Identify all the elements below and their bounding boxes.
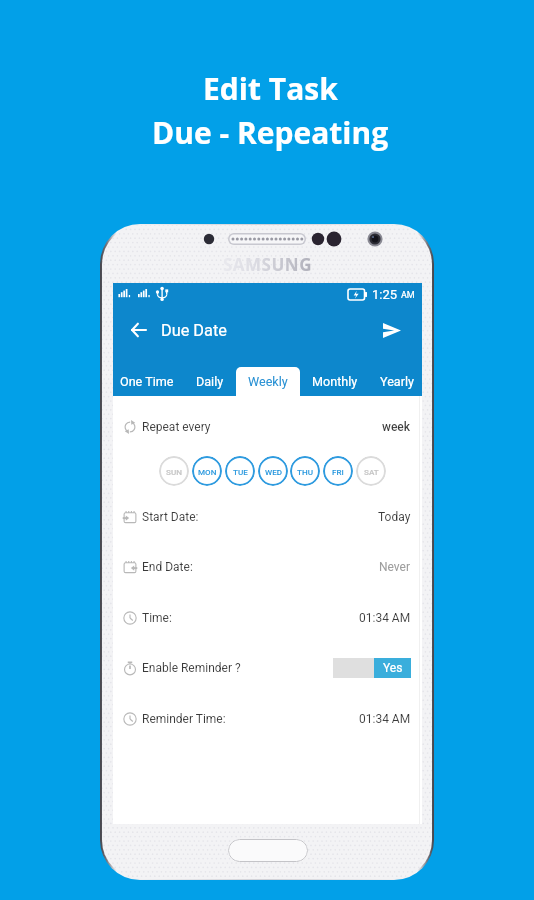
staticText: SUN: [166, 467, 182, 476]
button[interactable]: Repeat every: [123, 412, 411, 442]
button[interactable]: Yearly: [369, 367, 425, 396]
staticText: End Date:: [142, 560, 193, 574]
staticText: Time:: [142, 611, 172, 625]
button[interactable]: Start Date:: [123, 500, 411, 534]
staticText: FRI: [332, 467, 344, 476]
button[interactable]: Weekly: [236, 367, 300, 396]
staticText: WED: [265, 467, 282, 476]
staticText: Weekly: [248, 374, 288, 389]
staticText: Daily: [196, 374, 224, 389]
button[interactable]: MON: [192, 456, 222, 486]
staticText: Enable Reminder ?: [142, 661, 241, 675]
staticText: 01:34 AM: [359, 611, 411, 625]
button[interactable]: Reminder Time:: [123, 702, 411, 736]
staticText: Never: [379, 560, 411, 574]
staticText: Due - Repeating: [152, 112, 389, 153]
button[interactable]: Monthly: [300, 367, 369, 396]
staticText: AM: [401, 290, 415, 301]
staticText: Edit Task: [203, 68, 338, 109]
button[interactable]: SAT: [356, 456, 386, 486]
staticText: Yearly: [380, 374, 414, 389]
staticText: Repeat every: [142, 420, 211, 434]
button[interactable]: End Date:: [123, 550, 411, 584]
staticText: MON: [198, 467, 217, 476]
staticText: One Time: [120, 374, 174, 389]
button[interactable]: WED: [258, 456, 288, 486]
staticText: Start Date:: [142, 510, 199, 524]
button[interactable]: One Time: [110, 367, 184, 396]
button[interactable]: SUN: [159, 456, 189, 486]
staticText: THU: [297, 467, 313, 476]
button[interactable]: Daily: [184, 367, 236, 396]
staticText: SAMSUNG: [223, 253, 312, 276]
button[interactable]: Time:: [123, 601, 411, 635]
button[interactable]: Yes: [333, 658, 411, 678]
staticText: 1:25: [372, 287, 398, 302]
button[interactable]: Send: [377, 315, 407, 345]
button[interactable]: THU: [290, 456, 320, 486]
staticText: week: [382, 420, 411, 434]
staticText: Monthly: [312, 374, 358, 389]
staticText: TUE: [233, 467, 248, 476]
staticText: Reminder Time:: [142, 712, 226, 726]
staticText: Today: [378, 510, 411, 524]
staticText: SAT: [364, 467, 379, 476]
staticText: 01:34 AM: [359, 712, 411, 726]
button[interactable]: Home: [228, 839, 308, 862]
button[interactable]: TUE: [225, 456, 255, 486]
button[interactable]: Back: [123, 315, 153, 345]
staticText: Yes: [383, 661, 403, 675]
button[interactable]: FRI: [323, 456, 353, 486]
staticText: Due Date: [161, 321, 227, 340]
